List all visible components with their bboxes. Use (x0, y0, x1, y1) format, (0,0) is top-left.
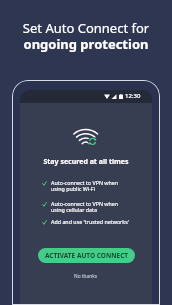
button[interactable]: ACTIVATE AUTO CONNECT (38, 248, 135, 263)
staticText: ACTIVATE AUTO CONNECT (45, 251, 129, 260)
staticText: Auto-connect to VPN when using cellular … (51, 200, 119, 213)
staticText: Add and use 'trusted networks' (51, 218, 129, 225)
button[interactable]: No thanks (20, 270, 152, 282)
staticText: ongoing protection (0, 35, 172, 53)
staticText: 12:30 (125, 92, 141, 100)
staticText: Stay secured at all times (20, 157, 152, 167)
staticText: No thanks (74, 273, 98, 280)
staticText: Auto-connect to VPN when using public Wi… (51, 179, 119, 192)
staticText: Set Auto Connect for (0, 19, 172, 37)
